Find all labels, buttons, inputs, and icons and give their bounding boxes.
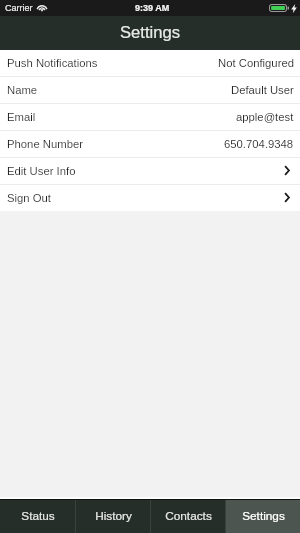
- staticText: Sign Out: [7, 192, 51, 205]
- staticText: Name: [7, 84, 38, 97]
- staticText: Push Notifications: [7, 57, 98, 70]
- staticText: Phone Number: [7, 138, 83, 151]
- staticText: Settings: [242, 509, 285, 522]
- staticText: Settings: [120, 23, 180, 42]
- staticText: apple@test: [236, 111, 294, 124]
- staticText: Default User: [231, 84, 294, 97]
- button[interactable]: Name: [0, 77, 300, 103]
- staticText: History: [95, 509, 132, 522]
- button[interactable]: Settings: [226, 500, 300, 533]
- staticText: Email: [7, 111, 36, 124]
- button[interactable]: Edit User Info: [0, 158, 300, 184]
- button[interactable]: Email: [0, 104, 300, 130]
- staticText: 9:39 AM: [135, 3, 170, 13]
- button[interactable]: Phone Number: [0, 131, 300, 157]
- button[interactable]: Contacts: [151, 500, 225, 533]
- button[interactable]: Status: [0, 500, 75, 533]
- button[interactable]: Push Notifications: [0, 50, 300, 76]
- staticText: Not Configured: [218, 57, 294, 70]
- button[interactable]: Sign Out: [0, 185, 300, 211]
- button[interactable]: History: [76, 500, 150, 533]
- staticText: Carrier: [5, 3, 33, 13]
- staticText: 650.704.9348: [224, 138, 294, 151]
- staticText: Contacts: [165, 509, 212, 522]
- staticText: Edit User Info: [7, 165, 76, 178]
- staticText: Status: [21, 509, 55, 522]
